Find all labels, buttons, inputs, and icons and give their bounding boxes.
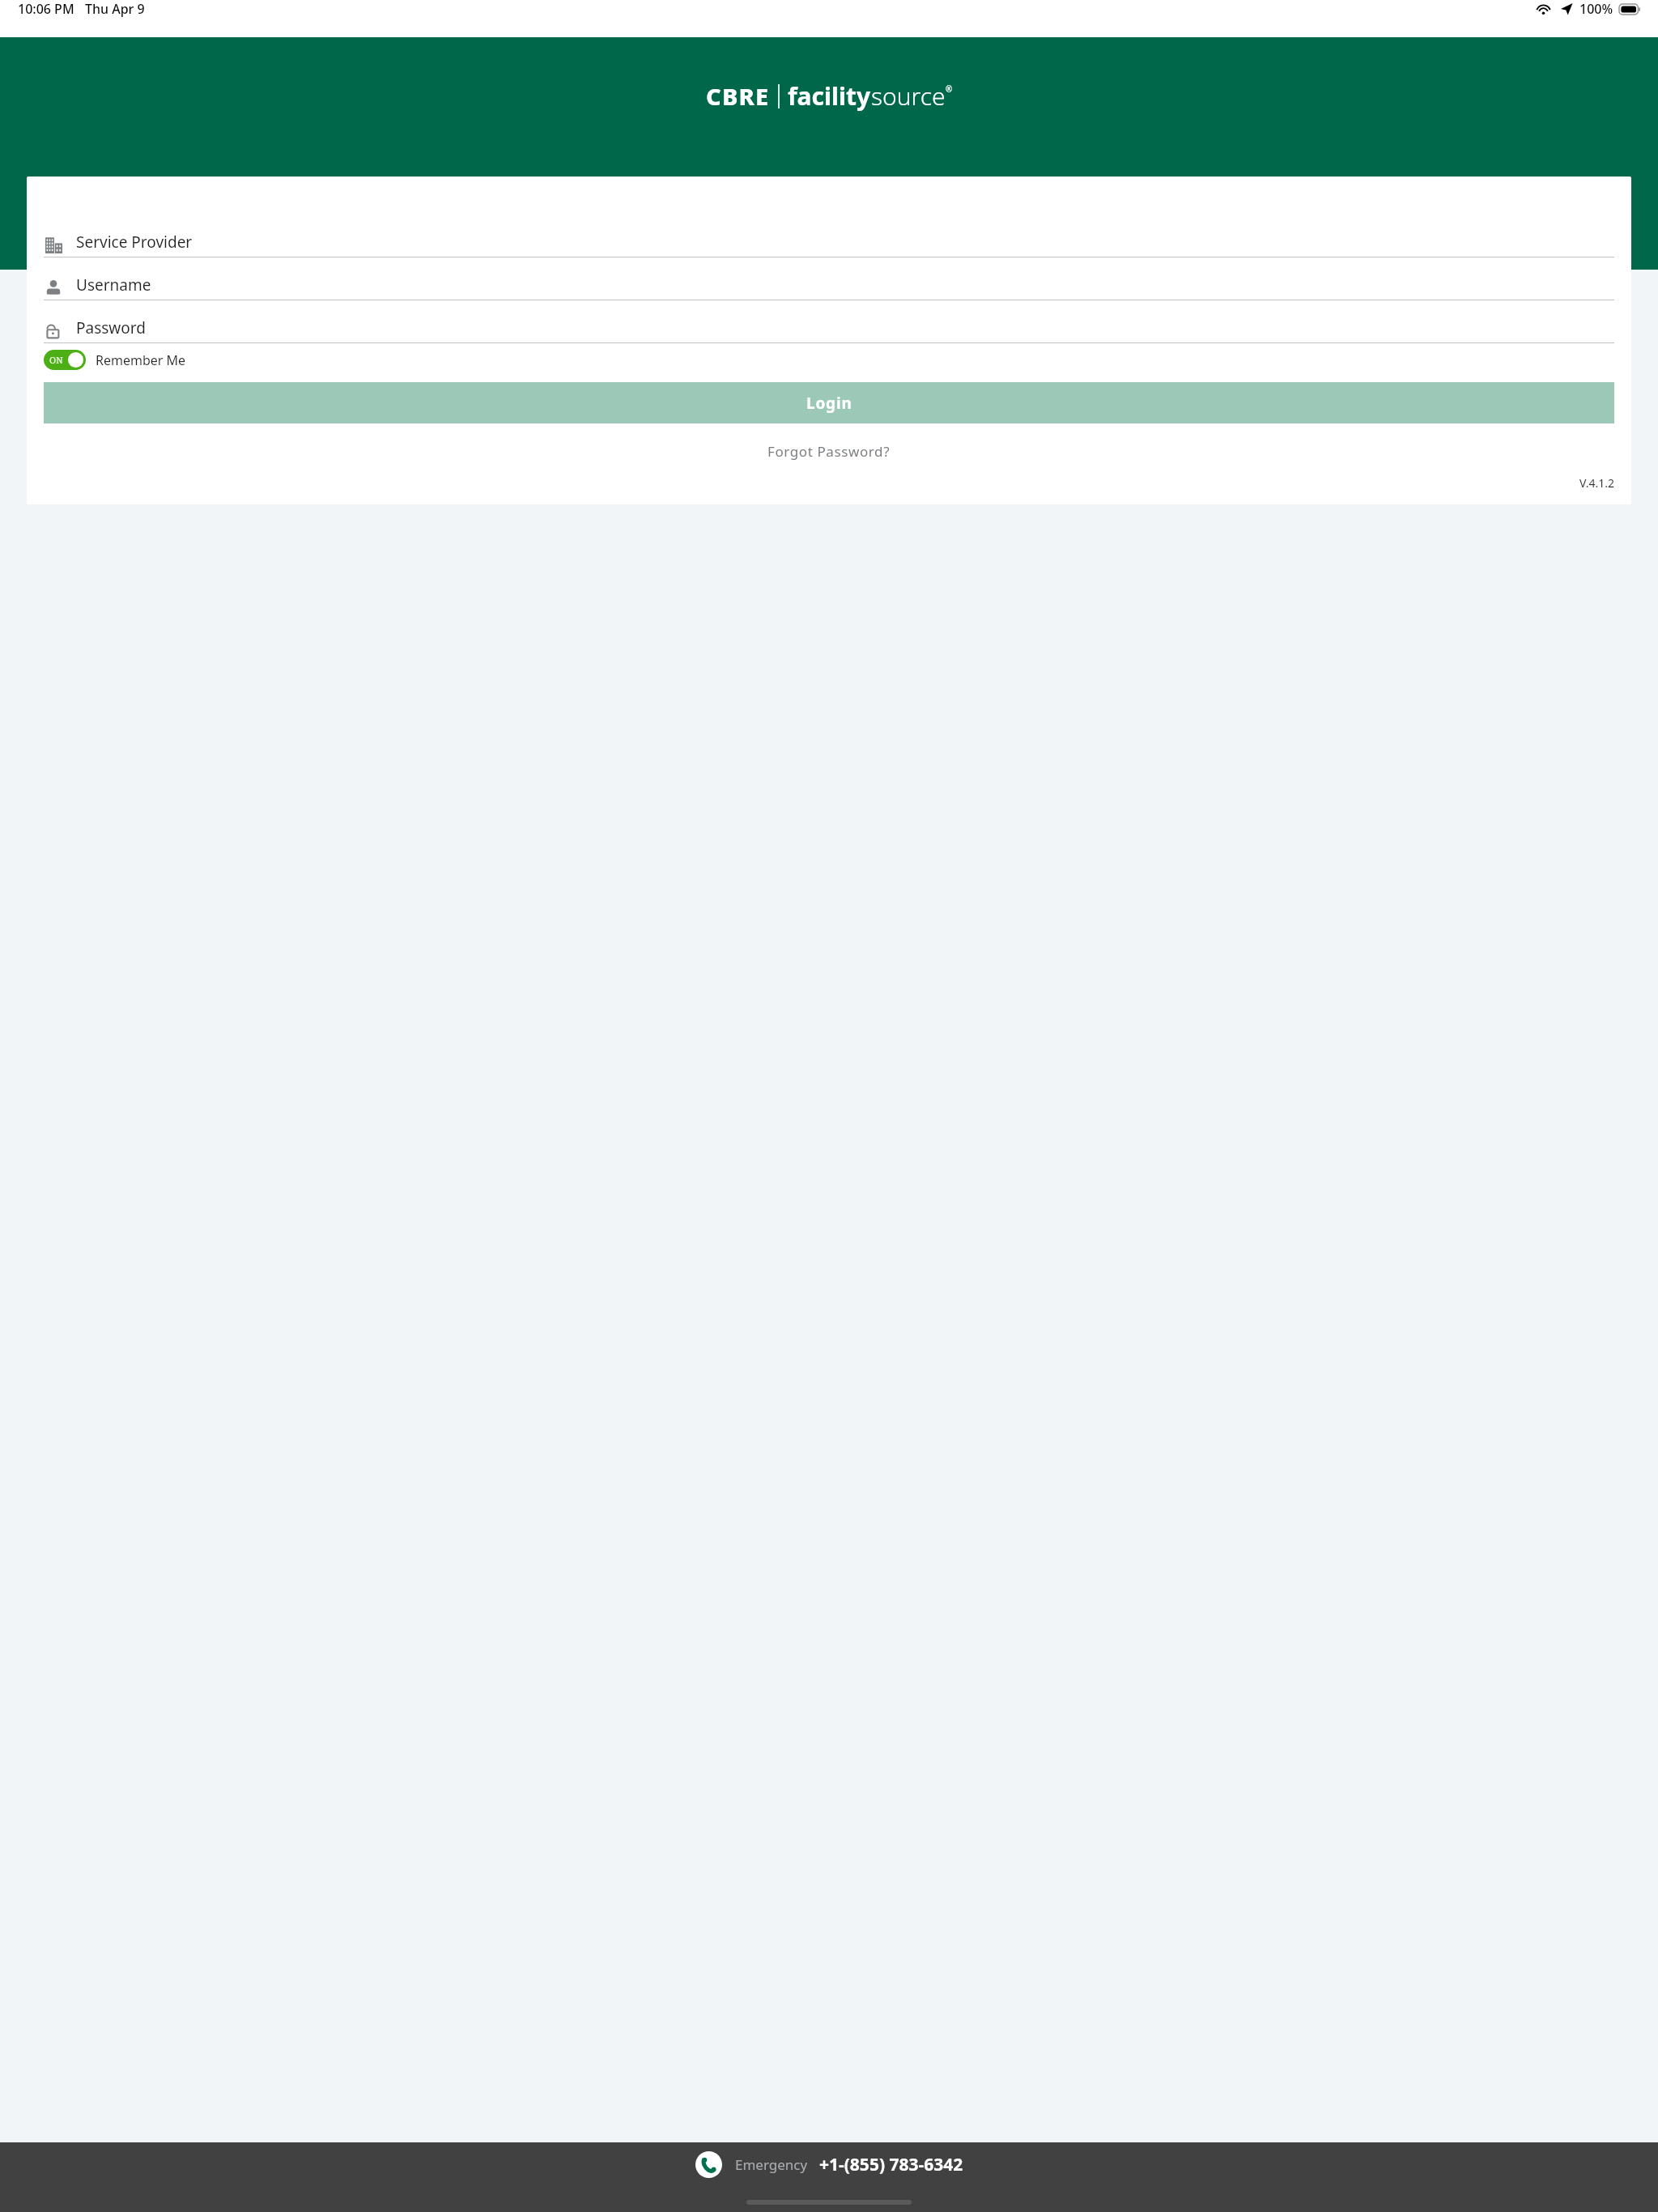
staticText: Thu Apr 9 [85,0,145,18]
button[interactable]: Service Provider [44,215,1614,257]
staticText: ® [946,83,953,95]
button[interactable]: Login [44,382,1614,423]
button[interactable]: Emergency [695,2151,963,2178]
button[interactable]: Password [44,300,1614,343]
other: Remember Me toggle, on [44,350,86,370]
staticText: source [871,79,946,113]
staticText: Remember Me [96,351,186,369]
staticText: Password [76,317,146,338]
button[interactable]: Username [44,257,1614,300]
staticText: 100% [1579,0,1613,18]
staticText: Login [806,393,852,414]
staticText: Forgot Password? [767,442,891,461]
staticText: facility [788,79,871,113]
staticText: V.4.1.2 [1579,475,1614,491]
staticText: Emergency [735,2155,808,2174]
staticText: CBRE [706,80,770,112]
staticText: Username [76,274,151,296]
button[interactable]: Forgot Password? [27,442,1631,461]
button[interactable]: Remember Me toggle, on [44,350,186,370]
staticText: +1-(855) 783-6342 [819,2153,963,2176]
staticText: 10:06 PM [18,0,74,18]
staticText: ON [49,354,63,366]
staticText: Service Provider [76,232,193,253]
